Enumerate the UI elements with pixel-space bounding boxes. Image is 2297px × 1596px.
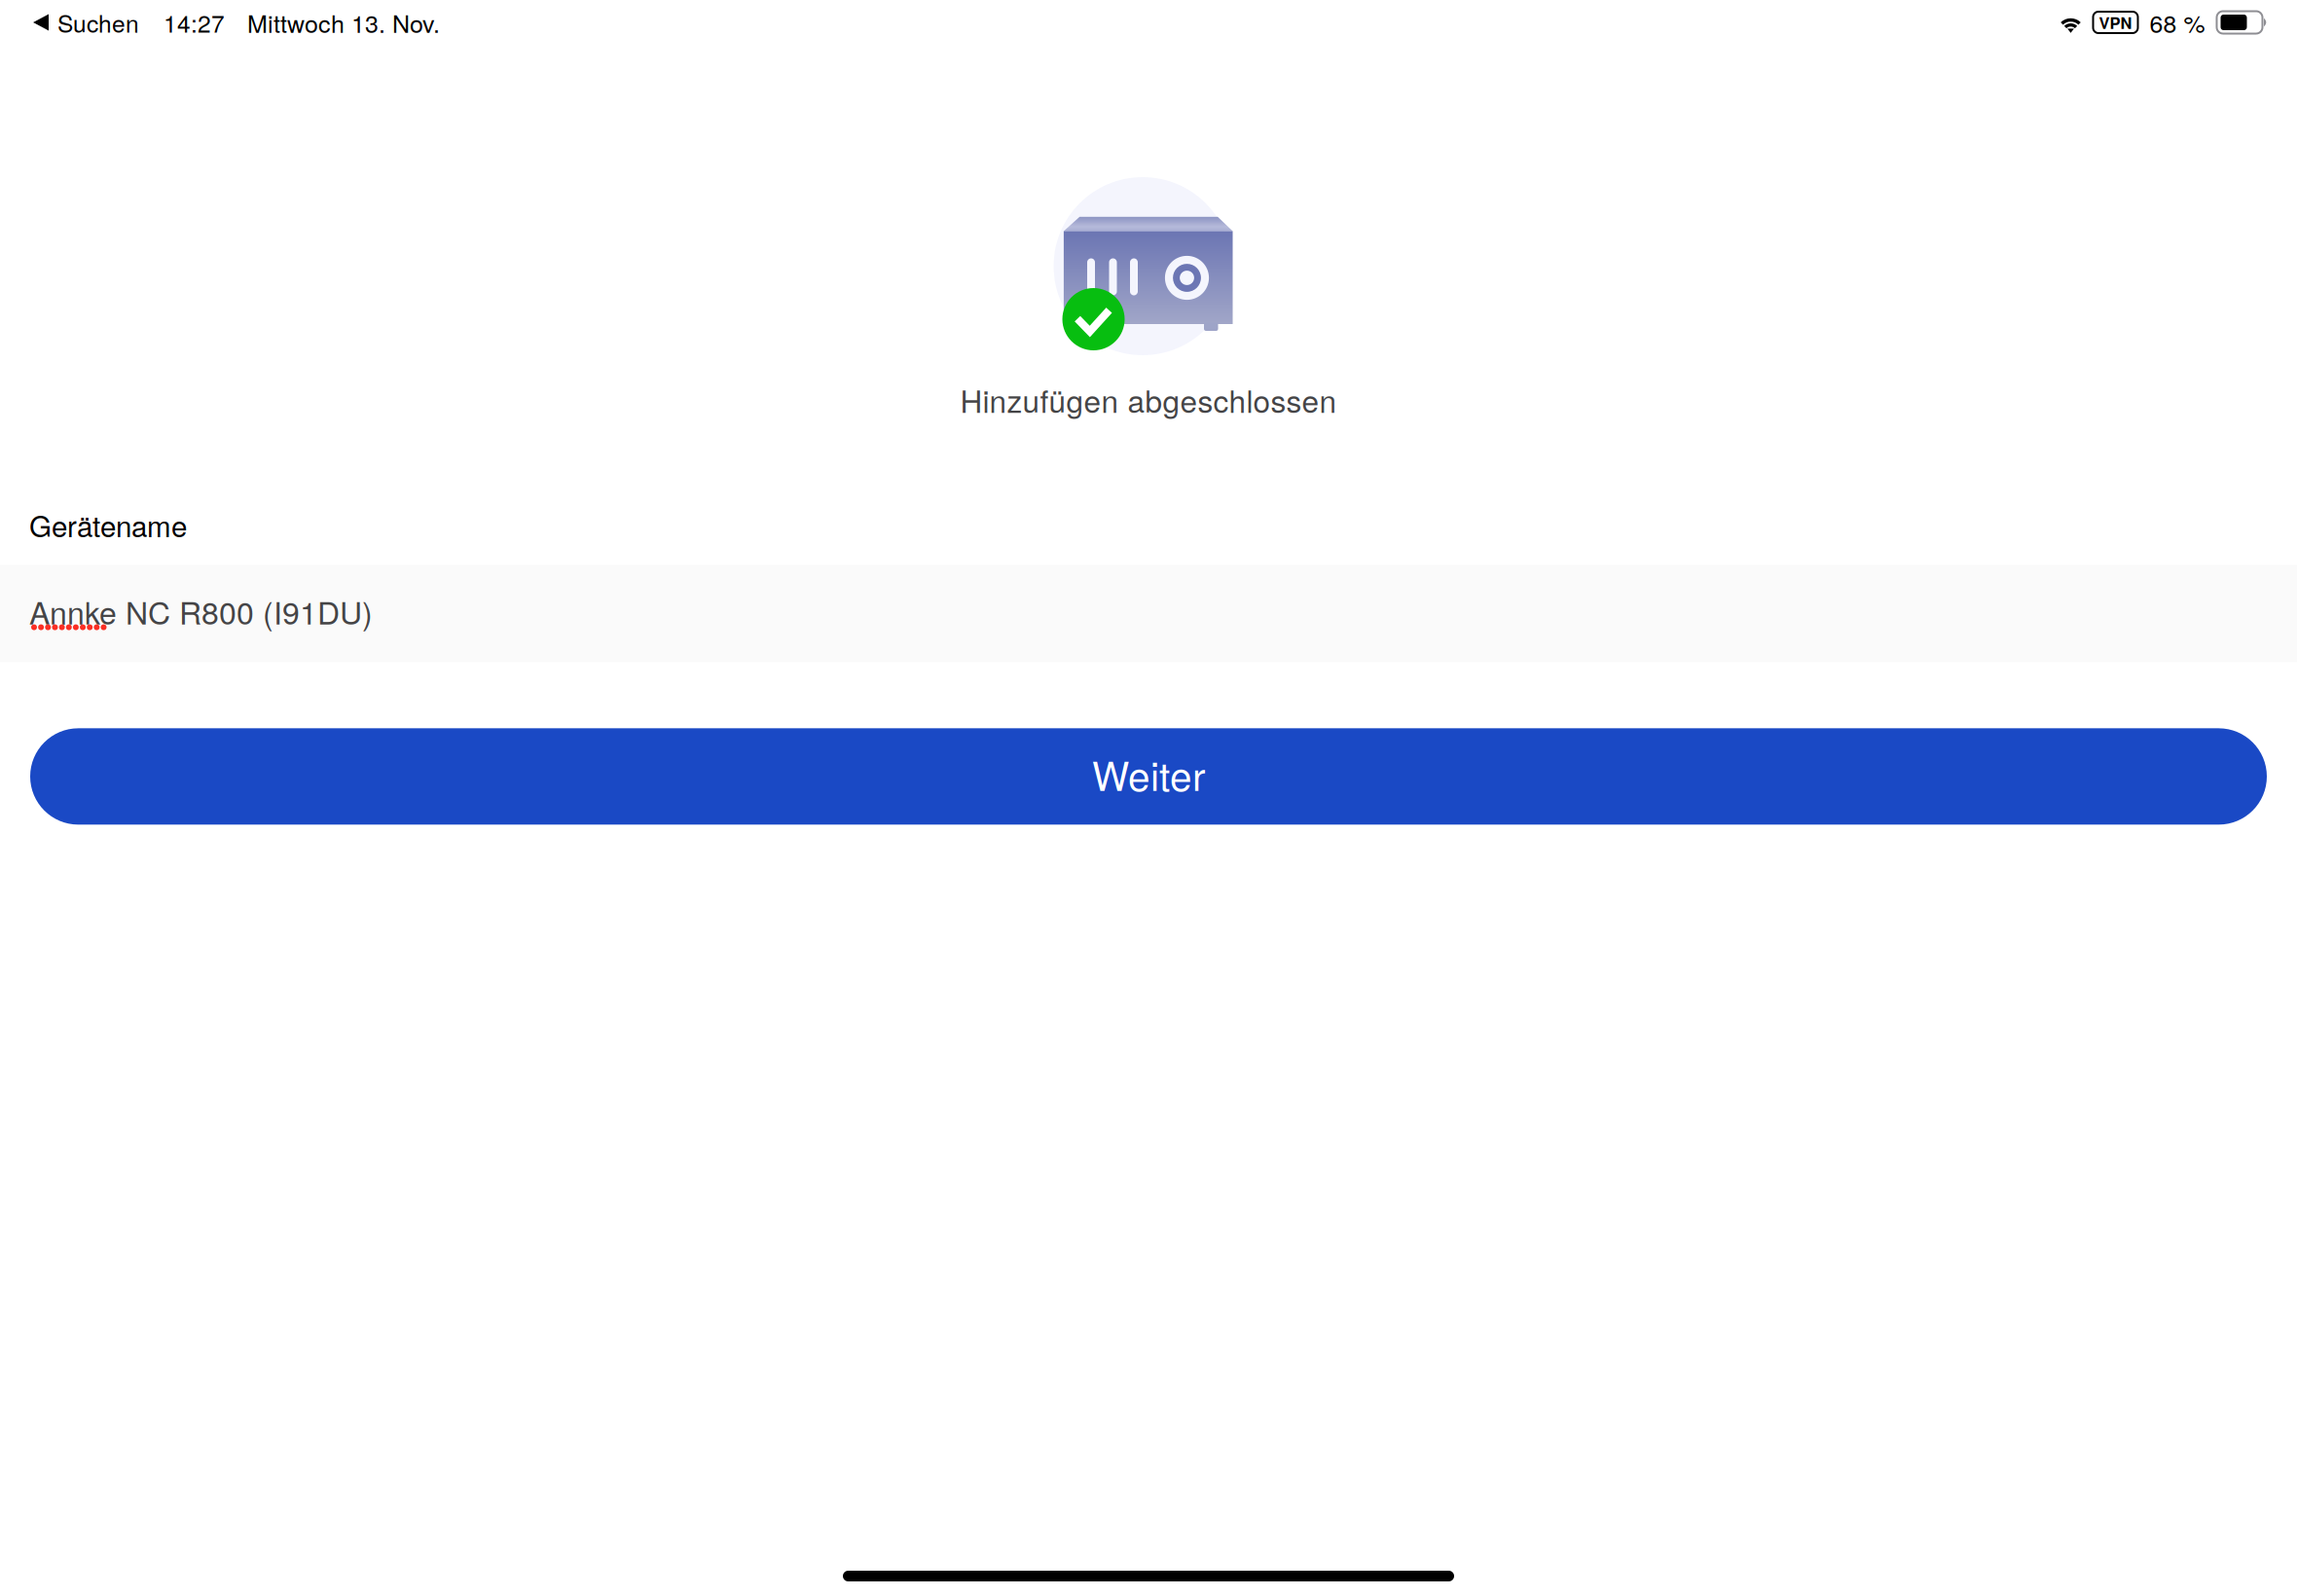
staticText: VPN	[2099, 11, 2132, 34]
staticText: Suchen	[57, 5, 139, 40]
staticText: 14:27	[164, 5, 225, 40]
staticText: Weiter	[1092, 746, 1205, 802]
button[interactable]: Weiter	[30, 728, 2267, 825]
button[interactable]: Annke NC R800 (I91DU)	[0, 565, 2297, 662]
staticText: Gerätename	[29, 504, 187, 545]
staticText: Mittwoch 13. Nov.	[247, 5, 440, 40]
staticText: Annke NC R800 (I91DU)	[29, 589, 373, 633]
staticText: Hinzufügen abgeschlossen	[960, 378, 1337, 421]
button[interactable]: Suchen	[33, 6, 139, 39]
staticText: 68 %	[2150, 5, 2205, 40]
